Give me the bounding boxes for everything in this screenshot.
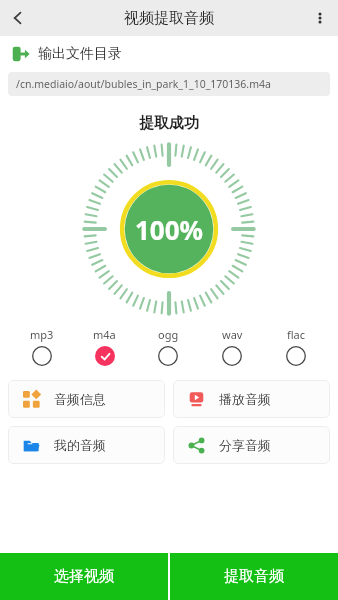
staticText: 提取音频 [224,567,284,586]
button[interactable]: 输出文件目录 [12,45,338,63]
staticText: wav [222,327,243,342]
button[interactable]: 我的音频 [8,426,165,464]
staticText: 提取成功 [0,114,338,133]
staticText: 100% [135,212,204,247]
staticText: 播放音频 [219,391,271,407]
staticText: mp3 [30,327,54,342]
button[interactable]: 播放音频 [173,380,330,418]
button[interactable]: m4a [73,327,136,366]
staticText: ogg [158,327,179,342]
button[interactable]: 提取音频 [170,553,338,600]
button[interactable]: 选择视频 [0,553,168,600]
staticText: 输出文件目录 [38,45,122,63]
button[interactable]: wav [200,327,264,366]
button[interactable]: Back [0,0,36,36]
staticText: 音频信息 [54,391,106,407]
staticText: m4a [93,327,116,342]
staticText: 选择视频 [54,567,114,586]
button[interactable]: mp3 [10,327,73,366]
button[interactable]: /cn.mediaio/aout/bubles_in_park_1_10_170… [8,72,330,96]
staticText: 分享音频 [219,437,271,453]
staticText: 视频提取音频 [124,9,214,28]
button[interactable]: 音频信息 [8,380,165,418]
staticText: /cn.mediaio/aout/bubles_in_park_1_10_170… [16,77,271,91]
button[interactable]: More options [302,0,338,36]
button[interactable]: 分享音频 [173,426,330,464]
button[interactable]: flac [264,327,328,366]
staticText: 我的音频 [54,437,106,453]
staticText: flac [287,327,306,342]
button[interactable]: ogg [136,327,200,366]
